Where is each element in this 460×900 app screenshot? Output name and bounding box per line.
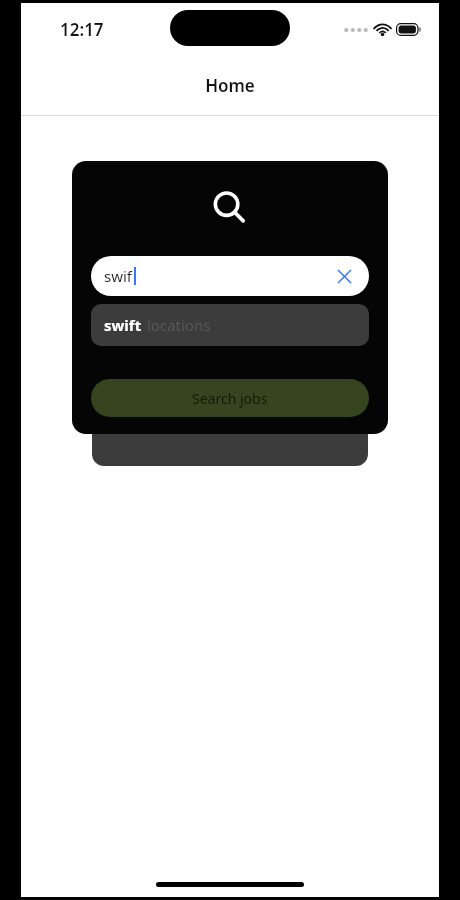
button[interactable]: Search jobs [91,379,369,417]
button[interactable]: swift [91,304,369,346]
staticText: Search jobs [192,389,268,408]
button[interactable]: swif [91,256,369,296]
staticText: locations [147,315,211,335]
staticText: 12:17 [60,18,104,41]
staticText: swif [104,266,133,286]
staticText: Home [205,74,255,97]
staticText: swift [104,315,142,335]
button[interactable]: Clear search [332,264,356,288]
